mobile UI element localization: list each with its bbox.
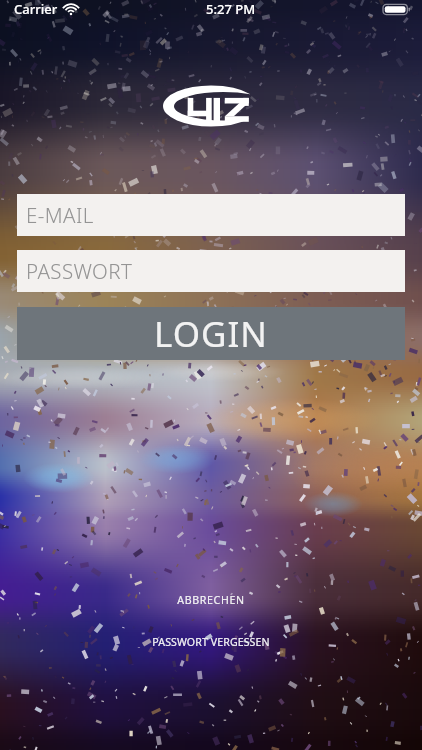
button[interactable]: PASSWORT VERGESSEN [138, 631, 284, 653]
button[interactable]: LOGIN [17, 307, 405, 360]
other: 412 logo [0, 0, 422, 750]
staticText: LOGIN [154, 310, 268, 358]
staticText: E-MAIL [26, 201, 94, 229]
staticText: 5:27 PM [206, 0, 256, 18]
staticText: ABBRECHEN [177, 593, 245, 607]
staticText: PASSWORT VERGESSEN [152, 635, 270, 649]
button[interactable]: ABBRECHEN [163, 589, 259, 611]
staticText: Carrier [14, 0, 58, 18]
button[interactable]: E-MAIL [17, 194, 405, 236]
button[interactable]: PASSWORT [17, 250, 405, 292]
staticText: PASSWORT [26, 257, 133, 285]
